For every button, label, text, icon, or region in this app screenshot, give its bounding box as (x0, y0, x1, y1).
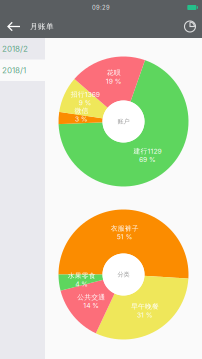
staticText: 公共交通 (77, 293, 105, 301)
staticText: 月账单 (30, 22, 54, 31)
staticText: 建行1129 (133, 147, 161, 155)
staticText: 31 % (137, 311, 153, 319)
staticText: 账户 (117, 118, 129, 125)
staticText: 水果零食 (68, 271, 96, 280)
staticText: 微信 (75, 106, 89, 115)
staticText: 14 % (83, 301, 99, 310)
staticText: 69 % (139, 155, 156, 164)
staticText: 09:29 (92, 4, 110, 11)
staticText: 衣服裤子 (111, 224, 139, 233)
button[interactable]: Back (0, 15, 26, 37)
staticText: 招行1369 (71, 90, 100, 99)
staticText: 51 % (117, 233, 133, 241)
staticText: 2018/1 (2, 65, 26, 75)
button[interactable]: 2018/1 (0, 59, 45, 81)
button[interactable]: Statistics (178, 15, 199, 37)
staticText: 分类 (117, 271, 129, 278)
staticText: 花呗 (107, 68, 121, 77)
staticText: 4 % (75, 280, 88, 288)
staticText: 9 % (79, 99, 92, 107)
staticText: 19 % (106, 77, 122, 85)
button[interactable]: 2018/2 (0, 38, 45, 59)
staticText: 2018/2 (2, 44, 28, 54)
staticText: 早午晚餐 (131, 302, 159, 311)
staticText: 3 % (75, 115, 88, 123)
